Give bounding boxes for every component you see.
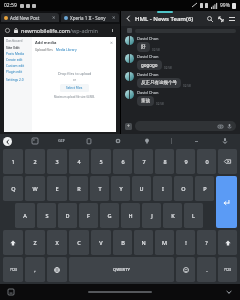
button[interactable]: Posts Media [6,52,30,56]
button[interactable]: 8 [155,149,174,174]
staticText: Maximum upload file size: 64 MB. [54,95,95,99]
button[interactable]: David Chan [125,90,236,106]
button[interactable]: Q [3,176,23,201]
button[interactable]: U [132,176,151,201]
button[interactable]: D [58,203,77,228]
button[interactable]: Back [124,14,133,23]
button[interactable]: Add [125,123,132,130]
button[interactable]: Settings [113,136,123,146]
staticText: 8 [163,158,167,165]
staticText: W [32,185,38,192]
button[interactable]: I [153,176,172,201]
button[interactable]: 3 [47,149,67,174]
button[interactable]: Stickers [30,136,40,146]
button[interactable]: K [163,203,182,228]
button[interactable]: Menu [226,13,237,24]
button[interactable]: Z [25,230,45,255]
button[interactable]: 4 [69,149,89,174]
button[interactable]: Attachment [127,28,132,33]
button[interactable]: . [197,257,216,282]
button[interactable]: 6 [113,149,132,174]
button[interactable]: ? [197,230,216,255]
button[interactable]: 7 [134,149,153,174]
button[interactable]: W [25,176,45,201]
staticText: N [141,239,146,246]
button[interactable]: ?123 [3,257,23,282]
button[interactable]: X [47,230,67,255]
button[interactable]: Xperia 1 II - Sony [61,13,119,22]
button[interactable]: Search [204,13,215,24]
button[interactable]: Plugin edit [6,70,30,74]
button[interactable]: R [69,176,88,201]
button[interactable]: QWERTY [69,257,174,282]
button[interactable] [135,121,236,131]
staticText: Custom edit post [6,64,30,68]
button[interactable]: ?123 [218,257,237,282]
button[interactable]: B [113,230,132,255]
button[interactable]: T [90,176,109,201]
button[interactable]: Emoji [176,257,195,282]
staticText: 02:58 [156,102,164,106]
button[interactable]: Switch keyboard [6,287,16,297]
staticText: Add media [35,40,57,45]
button[interactable]: Y [111,176,130,201]
button[interactable]: Shift [3,230,23,255]
button[interactable]: GIF [58,138,65,144]
button[interactable]: 1 [3,149,23,174]
staticText: ✕ [112,15,116,20]
staticText: B [121,239,125,246]
button[interactable]: N [134,230,153,255]
button[interactable]: Clipboard [84,136,94,146]
button[interactable]: 9 [176,149,195,174]
button[interactable]: V [91,230,111,255]
staticText: U [139,185,144,192]
button[interactable]: Shift [218,230,237,255]
staticText: J [151,212,153,219]
button[interactable]: Custom edit post [6,64,30,68]
button[interactable]: Language [47,257,67,282]
button[interactable]: More [191,136,201,146]
button[interactable]: L [184,203,203,228]
staticText: 2 [33,158,37,165]
staticText: Settings 2.0 [6,78,24,82]
button[interactable]: 5 [91,149,111,174]
button[interactable]: Refresh [4,27,11,34]
button[interactable]: E [47,176,67,201]
button[interactable]: J [142,203,161,228]
button[interactable]: Hide keyboard [224,287,234,297]
button[interactable]: Theme [142,136,152,146]
button[interactable]: C [69,230,89,255]
button[interactable]: O [174,176,193,201]
staticText: + [127,123,130,130]
button[interactable]: F [79,203,98,228]
staticText: Posts Media [6,52,25,56]
button[interactable]: Select Files [60,84,89,92]
button[interactable]: Add New Post [1,13,59,22]
button[interactable]: David Chan [125,54,236,70]
button[interactable]: G [100,203,119,228]
button[interactable]: P [195,176,214,201]
button[interactable]: A [15,203,35,228]
staticText: 99% [220,2,230,9]
button[interactable]: , [25,257,45,282]
button[interactable]: Expand toolbar [3,137,12,146]
button[interactable]: Voice input [220,136,230,146]
button[interactable]: ! [176,230,195,255]
button[interactable]: S [37,203,56,228]
button[interactable]: H [121,203,140,228]
button[interactable]: 2 [25,149,45,174]
button[interactable]: 0 [197,149,216,174]
button[interactable]: Enter [216,176,237,228]
button[interactable]: M [155,230,174,255]
staticText: 6 [121,158,125,165]
staticText: 02:58 [164,66,172,70]
staticText: ✕ [110,41,113,45]
button[interactable]: Backspace [218,149,237,174]
button[interactable]: More options [109,24,116,37]
button[interactable]: David Chan [125,72,236,88]
staticText: O [181,185,186,192]
staticText: 1 [11,158,15,165]
button[interactable]: Create edit conte [6,58,30,62]
button[interactable]: David Chan [125,36,236,52]
button[interactable]: Call [215,13,226,24]
